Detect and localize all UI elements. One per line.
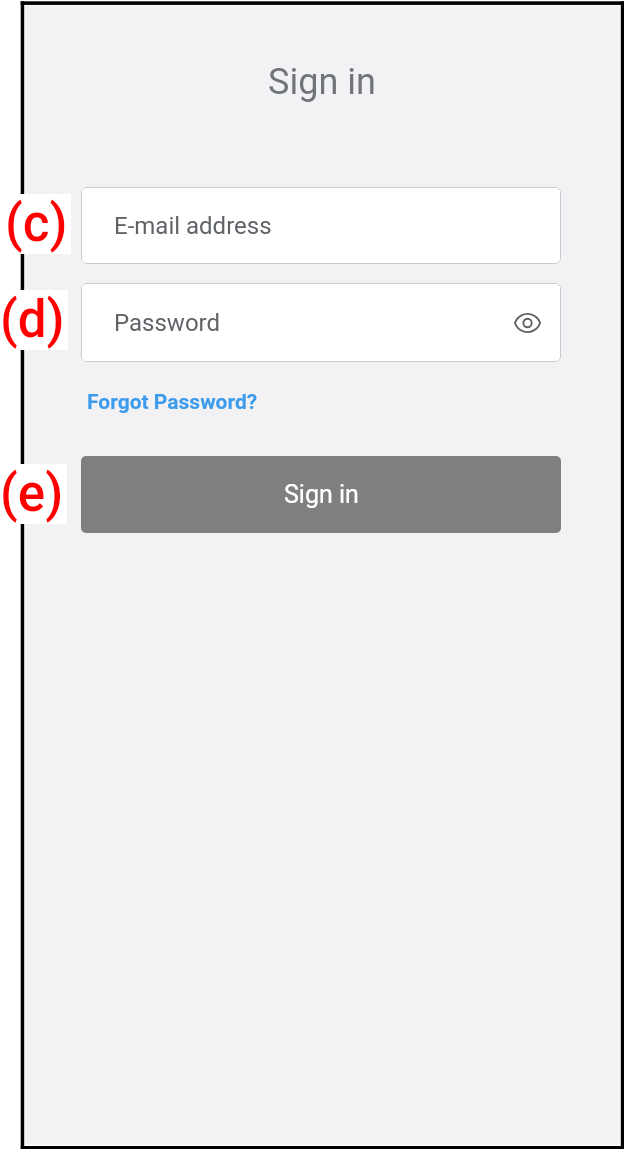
- staticText: Forgot Password?: [87, 390, 258, 415]
- button[interactable]: E-mail address: [81, 187, 561, 264]
- staticText: E-mail address: [114, 212, 272, 240]
- button[interactable]: Forgot Password?: [85, 388, 260, 417]
- button[interactable]: Show password: [506, 302, 548, 344]
- staticText: (c): [5, 194, 68, 254]
- staticText: Sign in: [284, 480, 359, 509]
- staticText: Password: [114, 309, 221, 337]
- button[interactable]: Sign in: [81, 456, 561, 533]
- staticText: (e): [0, 464, 64, 524]
- staticText: (d): [0, 290, 65, 350]
- staticText: Sign in: [22, 61, 622, 103]
- button[interactable]: Password: [81, 283, 561, 362]
